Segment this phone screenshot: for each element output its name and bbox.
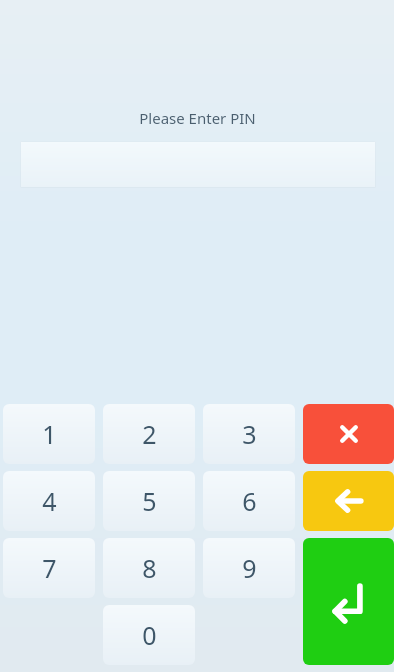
button[interactable]: 6 [203, 471, 295, 531]
staticText: 6 [242, 484, 257, 518]
staticText: Please Enter PIN [139, 108, 256, 128]
staticText: 0 [142, 618, 157, 652]
button[interactable]: 9 [203, 538, 295, 598]
button[interactable]: Enter [303, 538, 394, 665]
staticText: 1 [42, 417, 57, 451]
button[interactable]: 3 [203, 404, 295, 464]
staticText: 5 [142, 484, 157, 518]
button[interactable]: 0 [103, 605, 195, 665]
staticText: 9 [242, 551, 257, 585]
button[interactable]: 5 [103, 471, 195, 531]
button[interactable]: 2 [103, 404, 195, 464]
button[interactable]: Cancel [303, 404, 394, 464]
button[interactable]: 1 [3, 404, 95, 464]
button[interactable]: Backspace [303, 471, 394, 531]
staticText: 7 [42, 551, 57, 585]
staticText: 3 [242, 417, 257, 451]
staticText: 8 [142, 551, 157, 585]
button[interactable]: 8 [103, 538, 195, 598]
button[interactable]: 4 [3, 471, 95, 531]
button[interactable] [20, 141, 376, 188]
button[interactable]: 7 [3, 538, 95, 598]
staticText: 2 [142, 417, 157, 451]
staticText: 4 [42, 484, 57, 518]
